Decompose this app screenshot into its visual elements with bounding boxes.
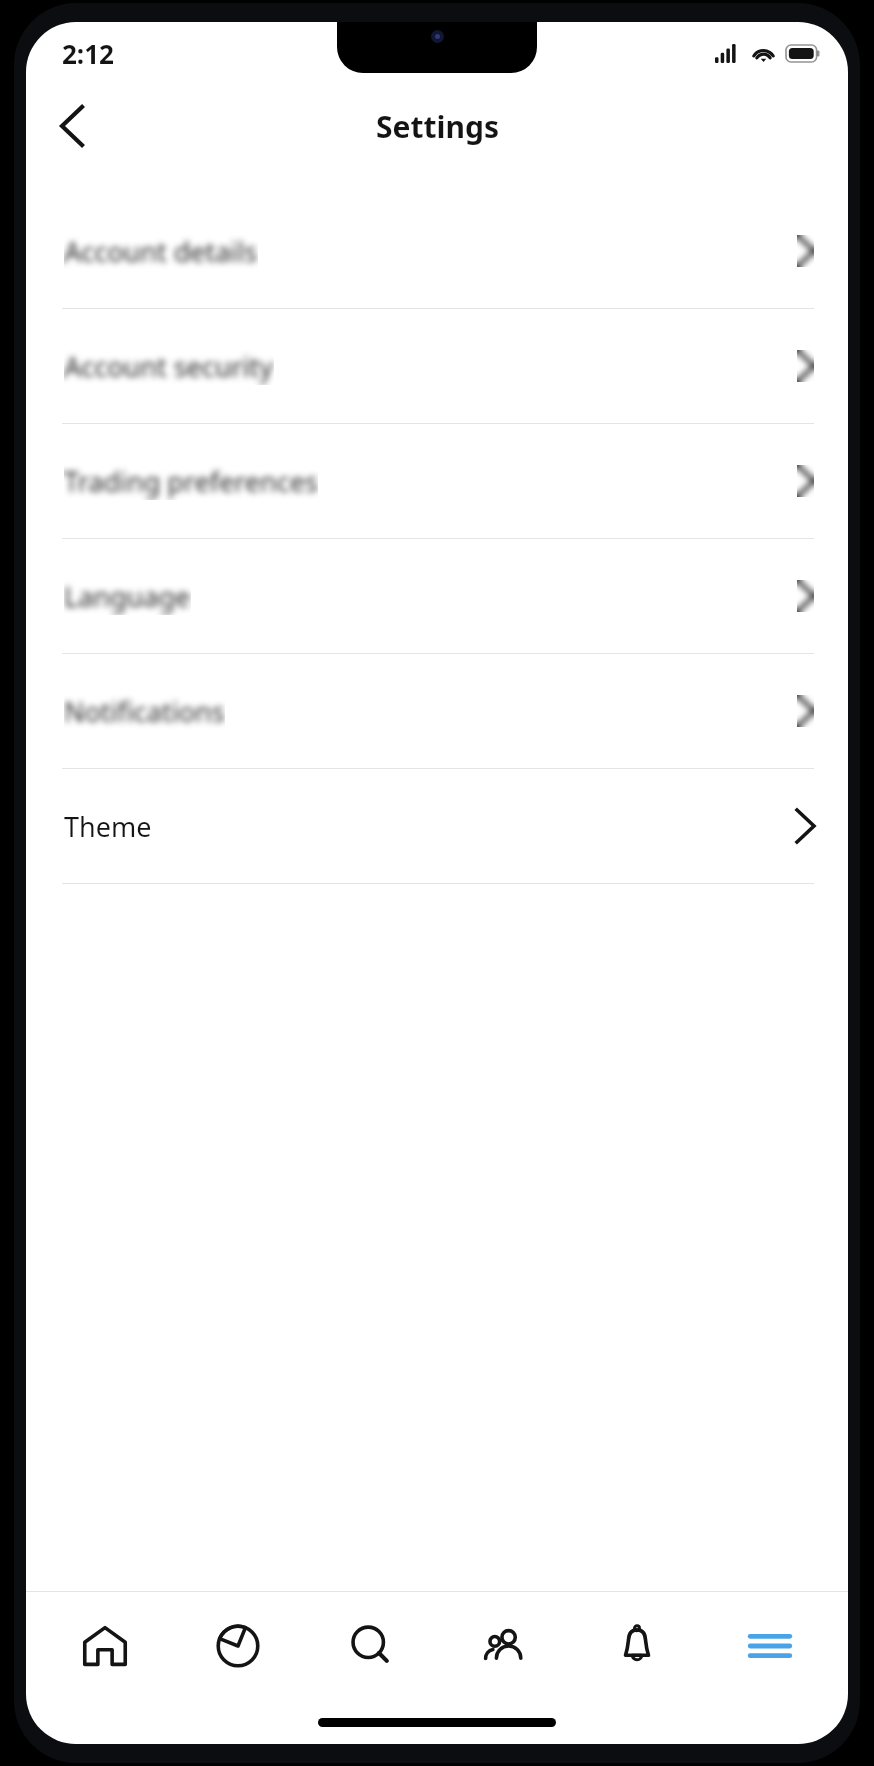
staticText: Notifications [64,693,225,730]
button[interactable]: Theme [26,769,848,884]
button[interactable]: Notifications [570,1592,703,1700]
staticText: 2:12 [62,36,114,71]
button[interactable]: Trading preferences [26,424,848,539]
button[interactable]: Account details [26,194,848,309]
button[interactable]: Back [40,94,104,158]
button[interactable]: Portfolio [171,1592,304,1700]
button[interactable]: People [437,1592,570,1700]
staticText: Theme [64,808,152,845]
staticText: Language [64,578,191,615]
staticText: Account details [64,233,258,270]
staticText: Account security [64,348,274,385]
button[interactable]: Search [304,1592,437,1700]
button[interactable]: Language [26,539,848,654]
button[interactable]: Notifications [26,654,848,769]
button[interactable]: Home [38,1592,171,1700]
button[interactable]: Menu [703,1592,836,1700]
button[interactable]: Account security [26,309,848,424]
staticText: Settings [376,106,499,147]
staticText: Trading preferences [64,463,318,500]
